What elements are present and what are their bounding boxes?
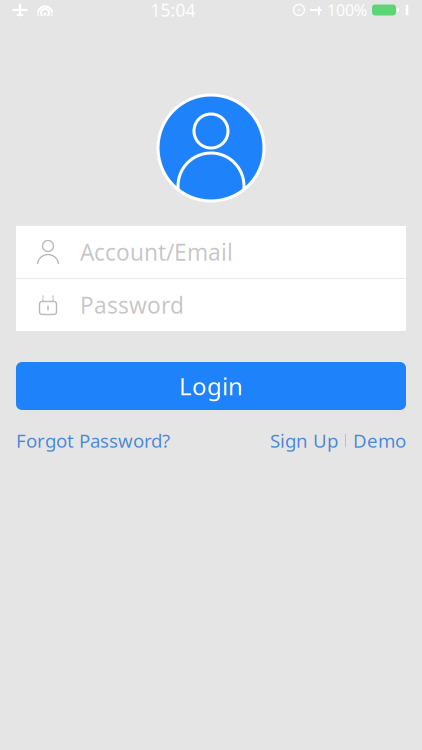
staticText: Demo [353,428,406,453]
button[interactable]: Demo [353,424,406,457]
staticText: Account/Email [80,237,233,267]
staticText: Sign Up [270,428,338,453]
button[interactable]: Password [16,279,406,331]
button[interactable]: Forgot Password? [16,424,170,457]
staticText: 15:04 [150,0,195,21]
staticText: Login [179,370,243,402]
button[interactable]: Login [16,362,406,410]
staticText: 100% [327,0,367,21]
button[interactable]: Sign Up [270,424,338,457]
staticText: Password [80,290,184,320]
staticText: Forgot Password? [16,428,170,453]
button[interactable]: Account/Email [16,226,406,278]
